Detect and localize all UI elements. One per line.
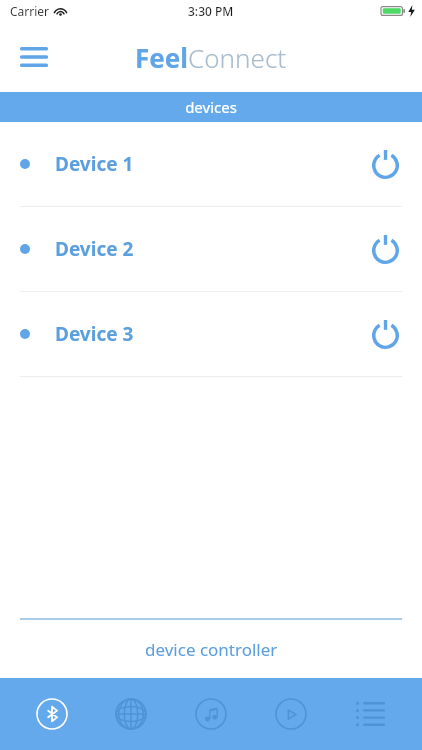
staticText: Device 1 [55,151,134,177]
button[interactable]: Power toggle Device 2 [361,225,409,273]
staticText: devices [185,97,237,117]
button[interactable]: Play [263,686,319,742]
button[interactable]: Power toggle Device 3 [361,310,409,358]
button[interactable]: Device 1 [0,122,422,206]
button[interactable]: Power toggle Device 1 [361,140,409,188]
staticText: FeelConnect [135,40,287,75]
button[interactable]: Bluetooth [24,686,80,742]
button[interactable]: devices [0,92,422,122]
staticText: device controller [145,638,278,661]
staticText: Device 2 [55,236,134,262]
button[interactable]: device controller [0,620,422,678]
staticText: 3:30 PM [188,3,234,19]
button[interactable]: Device 2 [0,207,422,291]
button[interactable]: Menu [12,35,56,79]
button[interactable]: Device 3 [0,292,422,376]
staticText: Device 3 [55,321,134,347]
staticText: Carrier [10,3,50,19]
button[interactable]: List [342,686,398,742]
button[interactable]: Globe [103,686,159,742]
button[interactable]: Music [183,686,239,742]
